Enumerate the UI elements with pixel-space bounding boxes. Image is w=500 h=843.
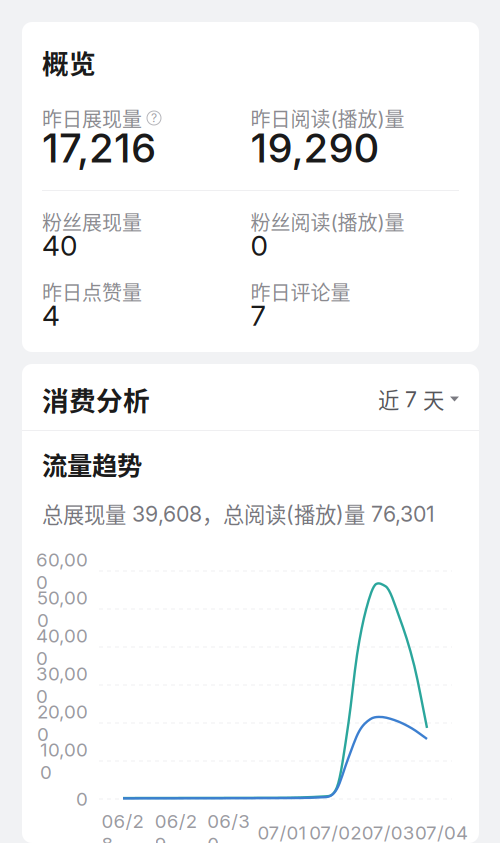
- staticText: 60,000: [36, 548, 88, 594]
- staticText: 06/29: [155, 810, 197, 843]
- staticText: 昨日展现量: [42, 103, 142, 132]
- staticText: 20,000: [37, 700, 88, 746]
- staticText: 流量趋势: [42, 446, 142, 482]
- staticText: 概览: [42, 43, 96, 81]
- staticText: 粉丝展现量: [42, 207, 142, 236]
- staticText: 0: [250, 229, 267, 262]
- staticText: 0: [76, 788, 88, 810]
- staticText: 近 7 天: [378, 384, 444, 414]
- staticText: 07/04: [415, 821, 468, 843]
- staticText: 07/03: [362, 821, 415, 843]
- staticText: 4: [42, 299, 60, 332]
- staticText: 06/30: [207, 810, 250, 843]
- staticText: 昨日阅读(播放)量: [250, 103, 404, 132]
- staticText: 06/28: [102, 810, 144, 843]
- staticText: 30,000: [36, 662, 88, 708]
- staticText: 07/01: [257, 821, 306, 843]
- staticText: 50,000: [37, 586, 88, 632]
- staticText: 粉丝阅读(播放)量: [250, 207, 404, 236]
- staticText: 消费分析: [42, 380, 150, 418]
- staticText: 17,216: [42, 124, 156, 172]
- staticText: 昨日点赞量: [42, 277, 142, 306]
- staticText: 总展现量 39,608，总阅读(播放)量 76,301: [42, 498, 435, 529]
- button[interactable]: 近 7 天: [378, 386, 459, 412]
- staticText: 40: [42, 229, 77, 262]
- staticText: 10,000: [40, 738, 88, 784]
- staticText: 19,290: [250, 124, 379, 172]
- staticText: 昨日评论量: [250, 277, 350, 306]
- staticText: 07/02: [309, 821, 361, 843]
- staticText: ?: [151, 111, 157, 125]
- staticText: 40,000: [36, 624, 88, 670]
- staticText: 7: [250, 299, 265, 332]
